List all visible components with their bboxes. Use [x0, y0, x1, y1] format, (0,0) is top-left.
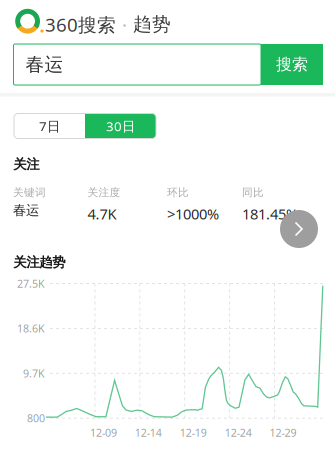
staticText: 春运 — [13, 202, 39, 218]
staticText: 12-29 — [270, 425, 297, 440]
staticText: 800 — [27, 411, 45, 425]
staticText: · — [122, 12, 127, 37]
staticText: 4.7K — [87, 204, 116, 224]
staticText: 趋势 — [133, 13, 171, 36]
button[interactable]: 下一个 — [280, 210, 318, 248]
button[interactable]: 7日 — [14, 113, 85, 138]
staticText: 春运 — [25, 53, 63, 76]
staticText: 关注度 — [87, 186, 120, 199]
staticText: 181.45% — [242, 204, 298, 224]
staticText: 27.5K — [17, 276, 45, 291]
staticText: 关注 — [13, 156, 39, 172]
staticText: 12-24 — [225, 425, 252, 440]
staticText: 30日 — [106, 117, 135, 135]
staticText: 18.6K — [17, 321, 45, 335]
staticText: 360搜索 — [45, 12, 116, 37]
button[interactable]: 30日 — [85, 113, 156, 138]
button[interactable]: 搜索 — [261, 44, 323, 85]
staticText: 12-09 — [90, 425, 117, 440]
staticText: >1000% — [167, 204, 219, 224]
staticText: 12-19 — [180, 425, 207, 440]
staticText: 12-14 — [135, 425, 162, 440]
staticText: 关键词 — [13, 186, 46, 199]
staticText: 7日 — [39, 117, 60, 135]
staticText: 9.7K — [23, 366, 45, 380]
staticText: 搜索 — [276, 55, 308, 74]
staticText: 环比 — [167, 186, 189, 199]
staticText: 关注趋势 — [13, 254, 65, 270]
staticText: 同比 — [242, 186, 264, 199]
